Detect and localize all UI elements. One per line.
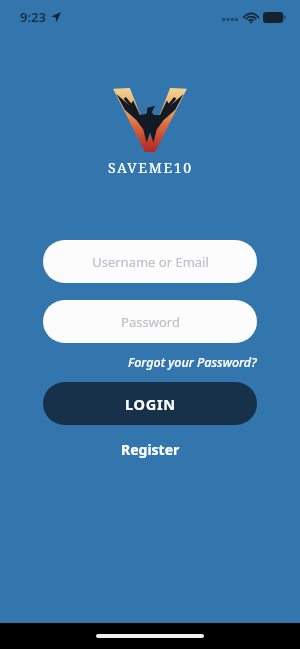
staticText: 9:23 (20, 8, 46, 26)
button[interactable]: LOGIN (43, 382, 257, 425)
staticText: LOGIN (125, 394, 176, 414)
staticText: SAVEME10 (108, 158, 193, 177)
button[interactable]: Forgot your Password? (43, 352, 257, 373)
staticText: Username or Email (92, 253, 209, 271)
staticText: Register (121, 440, 180, 459)
button[interactable]: Password (43, 300, 257, 343)
button[interactable]: Register (43, 437, 257, 462)
staticText: Forgot your Password? (128, 354, 257, 371)
staticText: Password (121, 313, 180, 331)
button[interactable]: Username or Email (43, 240, 257, 283)
